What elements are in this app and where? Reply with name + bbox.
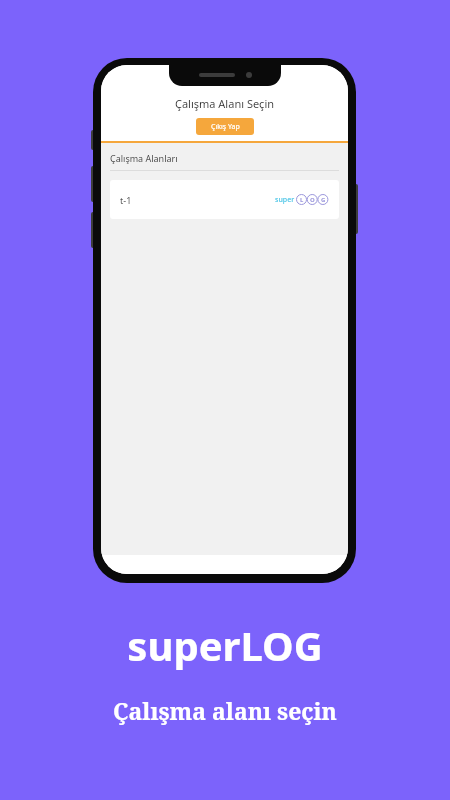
staticText: Çalışma Alanları [110, 152, 178, 164]
staticText: Çalışma alanı seçin [0, 695, 450, 726]
button[interactable]: t-1 [110, 180, 339, 219]
staticText: Çıkış Yap [211, 122, 240, 132]
staticText: superLOG [0, 618, 450, 672]
staticText: O [310, 196, 315, 204]
other: superLOG [275, 194, 329, 205]
staticText: Çalışma Alanı Seçin [101, 96, 348, 111]
staticText: super [275, 195, 295, 205]
staticText: L [300, 196, 304, 204]
staticText: G [321, 196, 326, 204]
button[interactable]: Çıkış Yap [196, 118, 254, 135]
staticText: t-1 [120, 194, 132, 206]
